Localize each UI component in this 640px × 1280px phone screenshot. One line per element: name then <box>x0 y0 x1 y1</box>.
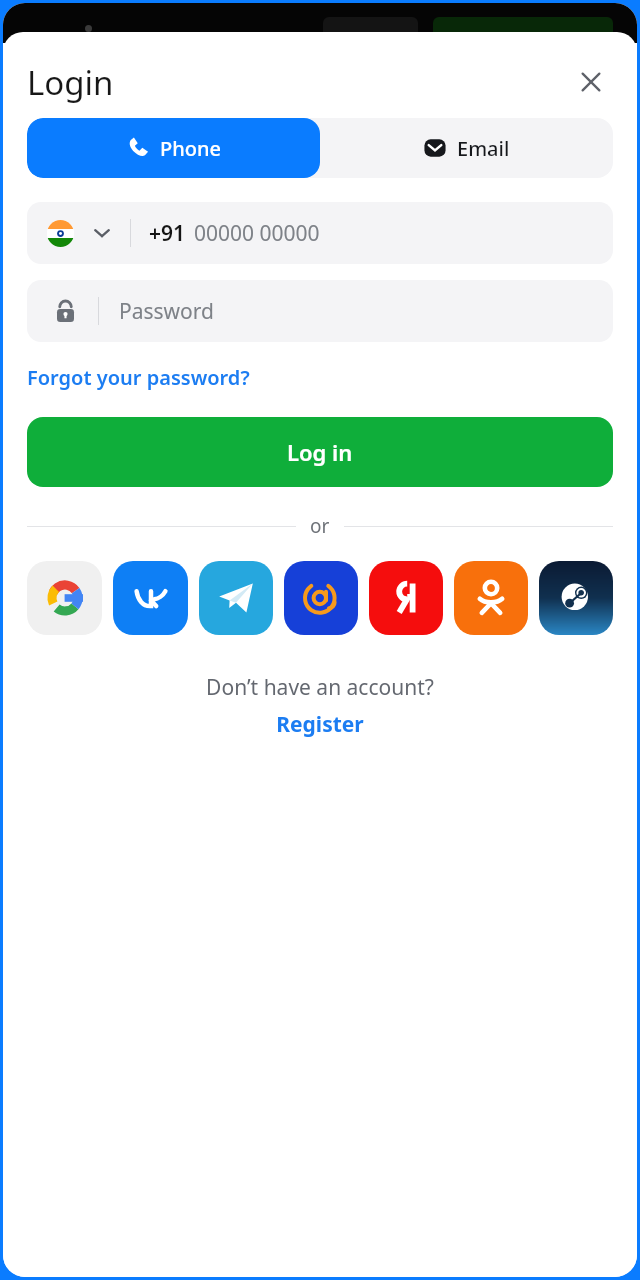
button[interactable]: Sign in with Yandex <box>369 561 443 635</box>
button[interactable]: +91 <box>27 202 613 264</box>
button[interactable]: Password <box>27 280 613 342</box>
button[interactable]: Sign in with Google <box>27 561 102 635</box>
staticText: Email <box>457 135 510 162</box>
staticText: Log in <box>287 437 353 467</box>
staticText: Forgot your password? <box>27 364 250 391</box>
staticText: +91 <box>149 219 186 248</box>
button[interactable]: Sign in with Odnoklassniki <box>454 561 528 635</box>
staticText: or <box>310 513 330 539</box>
staticText: Don’t have an account? <box>206 673 434 702</box>
button[interactable]: Register <box>276 710 364 739</box>
button[interactable]: Sign in with Mail.ru <box>284 561 358 635</box>
button[interactable]: Phone <box>27 118 320 178</box>
staticText: Phone <box>160 135 221 162</box>
button[interactable]: Log in <box>27 417 613 487</box>
staticText: Login <box>27 60 114 105</box>
button[interactable]: Sign in with Telegram <box>199 561 273 635</box>
staticText: 00000 00000 <box>194 219 320 248</box>
staticText: Register <box>276 710 364 739</box>
button[interactable]: Close <box>569 60 613 104</box>
button[interactable]: Sign in with VK <box>113 561 188 635</box>
button[interactable]: Email <box>320 118 613 178</box>
staticText: Password <box>119 297 214 326</box>
button[interactable]: Sign in with Steam <box>539 561 613 635</box>
button[interactable]: Forgot your password? <box>27 364 250 391</box>
